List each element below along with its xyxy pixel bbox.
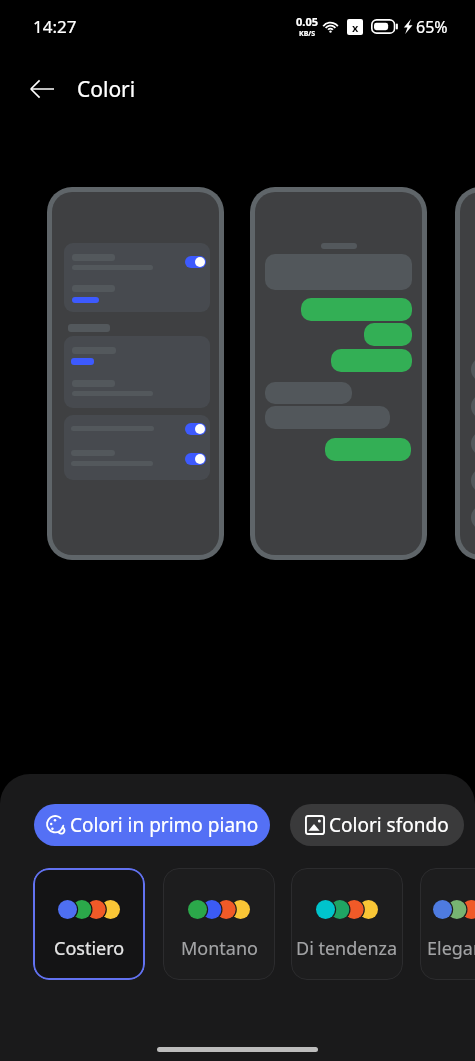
staticText: Elegante: [427, 936, 475, 961]
staticText: 0.05: [296, 14, 318, 29]
staticText: Colori in primo piano: [70, 812, 259, 838]
staticText: Costiero: [54, 936, 125, 961]
staticText: Montano: [181, 936, 258, 961]
button[interactable]: Elegante: [420, 868, 475, 980]
button[interactable]: Montano: [163, 868, 275, 980]
staticText: KB/S: [299, 29, 316, 39]
button[interactable]: Colori sfondo: [290, 804, 464, 846]
staticText: 14:27: [33, 15, 77, 38]
staticText: x: [352, 20, 359, 35]
button[interactable]: Di tendenza: [291, 868, 403, 980]
button[interactable]: Back: [19, 66, 65, 112]
button[interactable]: Costiero: [33, 868, 145, 980]
button[interactable]: Colori in primo piano: [34, 804, 270, 846]
staticText: Colori: [77, 75, 136, 104]
staticText: Di tendenza: [296, 936, 398, 961]
staticText: 65%: [416, 16, 448, 38]
staticText: Colori sfondo: [329, 812, 449, 838]
